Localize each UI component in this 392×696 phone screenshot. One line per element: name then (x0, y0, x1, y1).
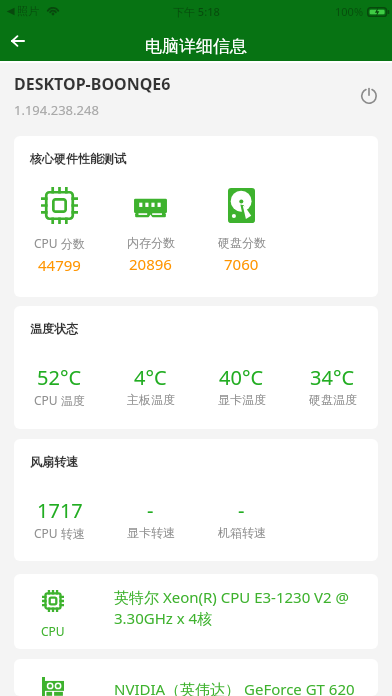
staticText: CPU (41, 623, 65, 639)
staticText: 40°C (219, 364, 264, 391)
staticText: - (147, 497, 154, 524)
staticText: 风扇转速 (30, 454, 78, 469)
staticText: 电脑详细信息 (145, 36, 247, 57)
staticText: 4°C (134, 364, 167, 391)
button[interactable]: CPU (14, 574, 378, 639)
staticText: - (238, 497, 245, 524)
staticText: 1.194.238.248 (14, 101, 99, 119)
button[interactable]: 内存分数 (105, 187, 196, 274)
button[interactable]: 40°C (196, 364, 287, 407)
button[interactable]: Power (351, 78, 387, 114)
staticText: 44799 (38, 255, 81, 275)
staticText: 显卡温度 (218, 392, 266, 407)
staticText: 20896 (129, 254, 172, 274)
staticText: DESKTOP-BOONQE6 (14, 73, 171, 95)
staticText: 硬盘分数 (218, 235, 266, 250)
button[interactable]: 34°C (287, 364, 378, 407)
staticText: 温度状态 (30, 321, 78, 336)
button[interactable]: 硬盘分数 (196, 187, 287, 274)
staticText: NVIDIA（英伟达） GeForce GT 620 (114, 679, 365, 696)
staticText: 机箱转速 (218, 525, 266, 540)
button[interactable]: CPU 分数 (14, 187, 105, 275)
staticText: 照片 (17, 4, 39, 18)
button[interactable]: - (105, 497, 196, 540)
staticText: 52°C (37, 364, 82, 391)
staticText: CPU 转速 (34, 525, 85, 541)
button[interactable]: 52°C (14, 364, 105, 408)
staticText: 1717 (37, 497, 83, 524)
staticText: 硬盘温度 (309, 392, 357, 407)
button[interactable]: - (196, 497, 287, 540)
button[interactable]: 照片 (6, 4, 60, 18)
staticText: 核心硬件性能测试 (30, 151, 126, 166)
staticText: 7060 (224, 254, 259, 274)
staticText: 下午 5:18 (173, 4, 220, 19)
staticText: 主板温度 (127, 392, 175, 407)
staticText: 100% (335, 4, 364, 19)
button[interactable]: 4°C (105, 364, 196, 407)
button[interactable]: 显卡 (14, 659, 378, 696)
staticText: 英特尔 Xeon(R) CPU E3-1230 V2 @ 3.30GHz x 4… (114, 587, 365, 629)
staticText: CPU 分数 (34, 235, 85, 251)
staticText: CPU 温度 (34, 392, 85, 408)
staticText: 内存分数 (127, 235, 175, 250)
staticText: 显卡转速 (127, 525, 175, 540)
button[interactable]: 1717 (14, 497, 105, 541)
staticText: 34°C (310, 364, 355, 391)
button[interactable]: Back (2, 25, 34, 57)
